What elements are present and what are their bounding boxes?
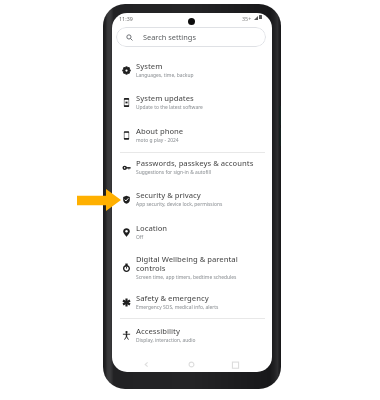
staticText: About phone [136,126,184,136]
button[interactable]: About phone [112,123,272,147]
button[interactable]: System [112,58,272,82]
button[interactable]: Passwords, passkeys & accounts [112,155,272,179]
button[interactable]: Safety & emergency [112,290,272,314]
staticText: System [136,61,163,71]
staticText: Emergency SOS, medical info, alerts [136,304,219,311]
button[interactable]: Digital Wellbeing & parental controls [112,252,272,282]
staticText: Off [136,234,144,241]
staticText: Search settings [143,32,196,42]
staticText: 11:39 [119,15,133,22]
button[interactable]: Back [141,359,152,370]
staticText: Passwords, passkeys & accounts [136,158,254,168]
button[interactable]: Accessibility [112,323,272,347]
button[interactable]: Search settings [116,27,266,47]
staticText: Location [136,223,168,233]
staticText: Screen time, app timers, bedtime schedul… [136,274,237,281]
staticText: Update to the latest software [136,104,203,111]
staticText: Display, interaction, audio [136,337,196,344]
staticText: Suggestions for sign-in & autofill [136,169,211,176]
staticText: 35+ [242,15,252,22]
button[interactable]: Location [112,220,272,244]
staticText: Digital Wellbeing & parental controls [136,254,256,273]
staticText: System updates [136,93,194,103]
staticText: App security, device lock, permissions [136,201,223,208]
staticText: moto g play - 2024 [136,137,179,144]
staticText: Security & privacy [136,190,201,200]
staticText: Safety & emergency [136,293,209,303]
button[interactable]: Recent apps [230,359,241,370]
button[interactable]: Security & privacy [112,187,272,211]
button[interactable]: System updates [112,90,272,114]
staticText: Languages, time, backup [136,72,194,79]
staticText: Accessibility [136,326,180,336]
button[interactable]: Home [186,359,197,370]
